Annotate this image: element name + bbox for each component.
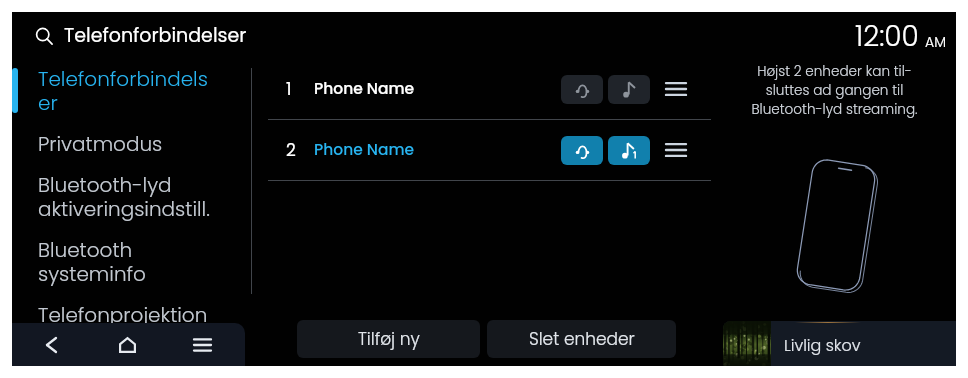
button[interactable]: Livlig skov	[723, 321, 956, 366]
staticText: Bluetooth systeminfo	[38, 236, 146, 288]
button[interactable]: Media audio	[608, 136, 650, 165]
staticText: 2	[286, 138, 296, 162]
button[interactable]: Menu	[180, 323, 225, 366]
staticText: AM	[925, 32, 946, 52]
button[interactable]: More options	[660, 134, 692, 166]
staticText: Bluetooth-lyd aktiveringsindstill.	[38, 171, 210, 223]
staticText: Slet enheder	[529, 327, 635, 351]
button[interactable]: Call audio	[561, 75, 603, 104]
staticText: Telefonforbindelser	[64, 22, 247, 49]
button[interactable]: Bluetooth systeminfo	[12, 230, 251, 295]
button[interactable]: 2	[251, 120, 712, 180]
button[interactable]: Media audio	[608, 75, 650, 104]
staticText: Højst 2 enheder kan til- sluttes ad gang…	[751, 62, 918, 118]
button[interactable]: Privatmodus	[12, 124, 251, 165]
staticText: Phone Name	[314, 78, 415, 100]
button[interactable]: Tilføj ny	[297, 320, 480, 358]
staticText: 12:00	[855, 17, 919, 56]
staticText: Phone Name	[314, 139, 415, 161]
button[interactable]: Home	[105, 323, 150, 366]
staticText: Privatmodus	[38, 130, 163, 158]
button[interactable]: Call audio	[561, 136, 603, 165]
staticText: Telefonforbindels er	[38, 65, 208, 117]
staticText: Telefonprojektion	[38, 301, 208, 329]
button[interactable]: 1	[251, 59, 712, 119]
button[interactable]: Bluetooth-lyd aktiveringsindstill.	[12, 165, 251, 230]
other: Search	[35, 27, 53, 45]
staticText: Livlig skov	[784, 334, 861, 356]
staticText: 1	[286, 77, 292, 101]
button[interactable]: Slet enheder	[487, 320, 676, 358]
staticText: Tilføj ny	[358, 327, 420, 351]
button[interactable]: Telefonprojektion	[12, 295, 251, 336]
button[interactable]: Back	[29, 323, 74, 366]
button[interactable]: More options	[660, 73, 692, 105]
button[interactable]: Telefonforbindels er	[12, 59, 251, 124]
